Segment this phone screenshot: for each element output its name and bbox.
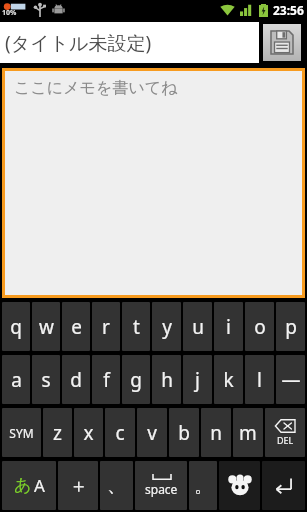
- button[interactable]: z: [43, 408, 72, 457]
- staticText: y: [162, 314, 172, 340]
- staticText: i: [226, 314, 231, 340]
- staticText: 、: [107, 474, 126, 498]
- button[interactable]: g: [122, 355, 150, 404]
- staticText: h: [161, 367, 173, 393]
- button[interactable]: SYM: [2, 408, 41, 457]
- staticText: t: [133, 314, 140, 340]
- staticText: z: [53, 420, 62, 446]
- button[interactable]: n: [201, 408, 231, 457]
- button[interactable]: v: [137, 408, 167, 457]
- button[interactable]: m: [233, 408, 263, 457]
- button[interactable]: 、: [100, 461, 133, 510]
- button[interactable]: w: [32, 302, 60, 351]
- button[interactable]: Delete: [265, 408, 305, 457]
- staticText: d: [70, 367, 82, 393]
- button[interactable]: s: [32, 355, 60, 404]
- button[interactable]: o: [245, 302, 274, 351]
- staticText: ＋: [69, 474, 88, 498]
- button[interactable]: Input method: [219, 461, 260, 510]
- staticText: 10%: [2, 8, 17, 18]
- staticText: 23:56: [273, 2, 304, 18]
- staticText: b: [178, 420, 190, 446]
- staticText: j: [195, 367, 200, 393]
- staticText: あ: [14, 475, 32, 496]
- staticText: l: [257, 367, 262, 393]
- staticText: u: [192, 314, 204, 340]
- button[interactable]: c: [105, 408, 135, 457]
- staticText: f: [103, 367, 110, 393]
- button[interactable]: Enter: [262, 461, 305, 510]
- button[interactable]: —: [276, 355, 305, 404]
- button[interactable]: i: [214, 302, 243, 351]
- button[interactable]: x: [74, 408, 103, 457]
- button[interactable]: space: [135, 461, 187, 510]
- button[interactable]: e: [62, 302, 90, 351]
- staticText: g: [130, 367, 142, 393]
- staticText: m: [239, 420, 257, 446]
- staticText: DEL: [277, 434, 294, 446]
- button[interactable]: q: [2, 302, 30, 351]
- staticText: —: [281, 367, 301, 393]
- staticText: 。: [194, 474, 213, 498]
- button[interactable]: p: [276, 302, 305, 351]
- staticText: a: [11, 367, 22, 393]
- staticText: c: [115, 420, 125, 446]
- staticText: (タイトル未設定): [5, 30, 152, 56]
- button[interactable]: (タイトル未設定): [0, 22, 259, 63]
- button[interactable]: ここにメモを書いてね: [5, 71, 302, 295]
- staticText: p: [285, 314, 297, 340]
- staticText: e: [71, 314, 82, 340]
- button[interactable]: h: [152, 355, 181, 404]
- staticText: x: [83, 420, 94, 446]
- button[interactable]: r: [92, 302, 120, 351]
- staticText: r: [102, 314, 110, 340]
- button[interactable]: b: [169, 408, 199, 457]
- staticText: q: [10, 314, 22, 340]
- button[interactable]: j: [183, 355, 212, 404]
- staticText: v: [147, 420, 157, 446]
- button[interactable]: k: [214, 355, 243, 404]
- staticText: n: [210, 420, 222, 446]
- staticText: w: [39, 314, 54, 340]
- button[interactable]: t: [122, 302, 150, 351]
- button[interactable]: u: [183, 302, 212, 351]
- button[interactable]: f: [92, 355, 120, 404]
- button[interactable]: a: [2, 355, 30, 404]
- staticText: space: [145, 481, 178, 497]
- staticText: o: [254, 314, 266, 340]
- button[interactable]: y: [152, 302, 181, 351]
- button[interactable]: ＋: [58, 461, 98, 510]
- staticText: ここにメモを書いてね: [14, 78, 178, 98]
- staticText: s: [41, 367, 51, 393]
- button[interactable]: Save: [263, 24, 301, 61]
- staticText: SYM: [9, 425, 34, 441]
- button[interactable]: あ: [2, 461, 56, 510]
- staticText: k: [223, 367, 234, 393]
- staticText: A: [34, 474, 45, 497]
- button[interactable]: d: [62, 355, 90, 404]
- button[interactable]: 。: [189, 461, 217, 510]
- button[interactable]: l: [245, 355, 274, 404]
